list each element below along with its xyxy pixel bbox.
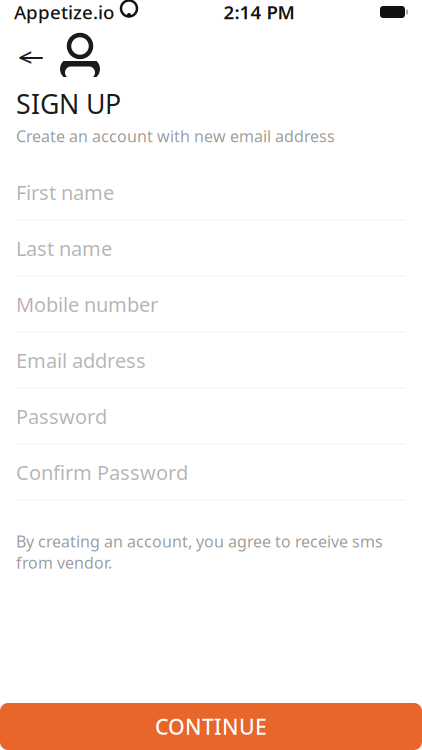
button[interactable]: Email address — [16, 333, 406, 389]
staticText: SIGN UP — [16, 86, 121, 121]
button[interactable]: Last name — [16, 221, 406, 277]
staticText: First name — [16, 179, 114, 205]
button[interactable]: Confirm Password — [16, 445, 406, 501]
staticText: Mobile number — [16, 291, 158, 317]
staticText: CONTINUE — [155, 712, 267, 741]
button[interactable]: First name — [16, 165, 406, 221]
button[interactable]: Mobile number — [16, 277, 406, 333]
staticText: Create an account with new email address — [16, 125, 335, 147]
button[interactable]: Back — [16, 36, 48, 80]
staticText: < — [18, 40, 32, 74]
staticText: 2:14 PM — [223, 0, 294, 24]
staticText: Confirm Password — [16, 459, 188, 485]
staticText: Password — [16, 403, 107, 429]
button[interactable]: Password — [16, 389, 406, 445]
button[interactable]: CONTINUE — [0, 703, 422, 750]
staticText: Appetize.io — [14, 0, 114, 24]
staticText: Email address — [16, 347, 146, 373]
staticText: Last name — [16, 235, 112, 261]
staticText: By creating an account, you agree to rec… — [16, 531, 383, 573]
